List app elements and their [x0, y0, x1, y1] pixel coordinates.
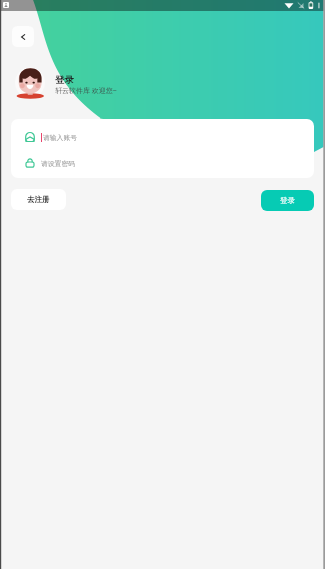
staticText: 去注册 [27, 195, 50, 204]
staticText: 请设置密码 [41, 159, 75, 168]
staticText: 请输入账号 [43, 133, 77, 142]
staticText: 轩云软件库 欢迎您~ [55, 86, 117, 96]
staticText: 登录 [280, 196, 295, 205]
button[interactable]: Back [12, 26, 34, 47]
button[interactable]: 去注册 [11, 189, 66, 210]
staticText: 登录 [55, 74, 74, 86]
button[interactable]: 登录 [261, 190, 314, 211]
